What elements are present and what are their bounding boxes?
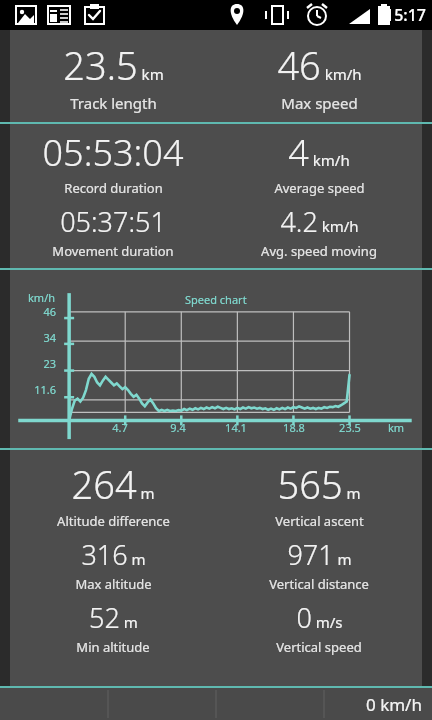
- staticText: Vertical ascent: [275, 512, 364, 530]
- button[interactable]: 52 m: [10, 599, 216, 656]
- staticText: 971 m: [287, 536, 352, 573]
- staticText: 4.2 km/h: [280, 203, 359, 240]
- staticText: 23.5 km: [63, 39, 164, 91]
- button[interactable]: 05:53:04: [10, 128, 216, 197]
- staticText: 4.7: [100, 420, 140, 435]
- staticText: 46 km/h: [277, 39, 362, 91]
- staticText: Average speed: [274, 179, 365, 197]
- staticText: 05:53:04: [42, 128, 184, 177]
- staticText: Altitude difference: [57, 512, 170, 530]
- staticText: 34: [14, 330, 56, 345]
- button[interactable]: 46 km/h: [216, 39, 422, 113]
- button[interactable]: 971 m: [216, 536, 422, 593]
- staticText: 4 km/h: [288, 128, 350, 177]
- staticText: 11.6: [14, 382, 56, 397]
- staticText: 14.1: [216, 420, 256, 435]
- staticText: 18.8: [274, 420, 314, 435]
- button[interactable]: 316 m: [10, 536, 216, 593]
- staticText: 52 m: [89, 599, 138, 636]
- staticText: Max speed: [281, 93, 358, 113]
- staticText: Max altitude: [75, 575, 152, 593]
- button[interactable]: 4.2 km/h: [216, 203, 422, 260]
- staticText: 46: [14, 304, 56, 319]
- button[interactable]: Speed chart: [10, 270, 422, 448]
- button[interactable]: 264 m: [10, 458, 216, 530]
- button[interactable]: 565 m: [216, 458, 422, 530]
- staticText: 264 m: [71, 458, 155, 510]
- staticText: 23: [14, 356, 56, 371]
- staticText: 15:17: [385, 4, 426, 26]
- staticText: km: [388, 420, 405, 435]
- staticText: 0 m/s: [296, 599, 343, 636]
- button[interactable]: 23.5 km: [10, 39, 216, 113]
- staticText: 565 m: [277, 458, 361, 510]
- button[interactable]: 0 m/s: [216, 599, 422, 656]
- staticText: 9.4: [158, 420, 198, 435]
- staticText: Movement duration: [52, 242, 174, 260]
- staticText: 316 m: [81, 536, 146, 573]
- staticText: Vertical speed: [276, 638, 362, 656]
- staticText: Speed chart: [185, 292, 247, 307]
- button[interactable]: 0 km/h: [366, 693, 422, 716]
- staticText: Avg. speed moving: [261, 242, 377, 260]
- button[interactable]: 05:37:51: [10, 203, 216, 260]
- staticText: 23.5: [330, 420, 370, 435]
- staticText: 05:37:51: [60, 203, 166, 240]
- staticText: Track length: [70, 93, 157, 113]
- button[interactable]: 4 km/h: [216, 128, 422, 197]
- staticText: Record duration: [64, 179, 163, 197]
- staticText: Min altitude: [76, 638, 150, 656]
- staticText: Vertical distance: [269, 575, 369, 593]
- staticText: km/h: [28, 290, 56, 305]
